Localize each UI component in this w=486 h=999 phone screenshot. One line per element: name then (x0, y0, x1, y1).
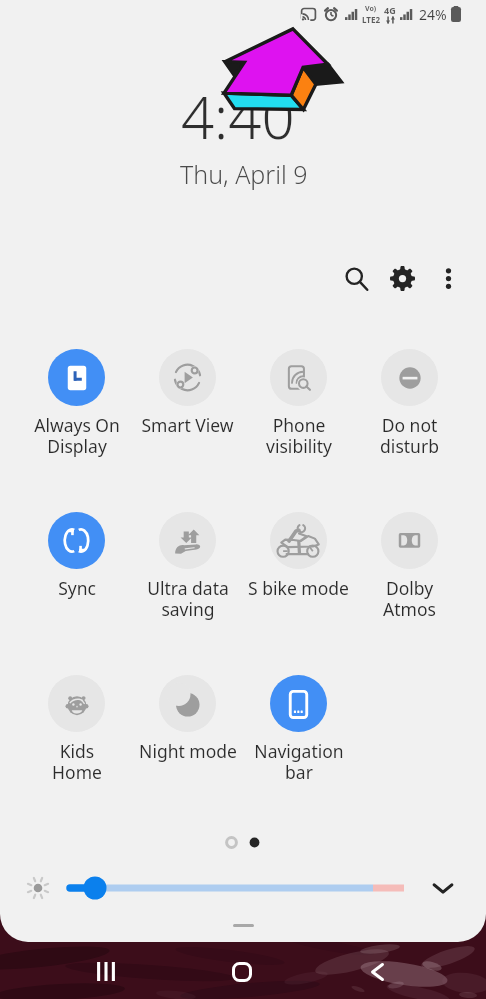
button[interactable]: Expand quick settings (426, 871, 460, 905)
staticText: Phone visibility (266, 413, 332, 458)
button[interactable]: Settings (379, 255, 425, 301)
staticText: Ultra data saving (147, 576, 229, 621)
button[interactable]: Dolby Atmos (354, 512, 465, 675)
staticText: S bike mode (248, 576, 349, 600)
staticText: Kids Home (52, 739, 102, 784)
staticText: Always On Display (34, 413, 120, 458)
button[interactable]: Sync (21, 512, 132, 675)
button[interactable]: Navigation bar (243, 675, 354, 838)
staticText: Thu, April 9 (180, 157, 308, 191)
staticText: Dolby Atmos (383, 576, 436, 621)
staticText: Night mode (139, 739, 237, 763)
button[interactable]: Back (350, 944, 405, 999)
button[interactable]: Do not disturb (354, 349, 465, 512)
staticText: 4G (384, 4, 396, 16)
staticText: Smart View (141, 413, 234, 437)
button[interactable]: Search (333, 255, 379, 301)
staticText: 4:40 (181, 77, 295, 156)
button[interactable]: Phone visibility (243, 349, 354, 512)
button[interactable]: Night mode (132, 675, 243, 838)
staticText: 24% (419, 5, 447, 24)
button[interactable]: Home (214, 944, 269, 999)
button[interactable]: S bike mode (243, 512, 354, 675)
staticText: Navigation bar (254, 739, 344, 784)
button[interactable]: Smart View (132, 349, 243, 512)
button[interactable]: More options (425, 255, 471, 301)
button[interactable]: Kids Home (21, 675, 132, 838)
button[interactable]: Always On Display (21, 349, 132, 512)
button[interactable]: Recents (78, 944, 133, 999)
staticText: LTE2 (362, 14, 380, 25)
staticText: Do not disturb (380, 413, 439, 458)
staticText: Vo) (365, 4, 377, 14)
button[interactable]: Ultra data saving (132, 512, 243, 675)
staticText: Sync (58, 576, 96, 600)
